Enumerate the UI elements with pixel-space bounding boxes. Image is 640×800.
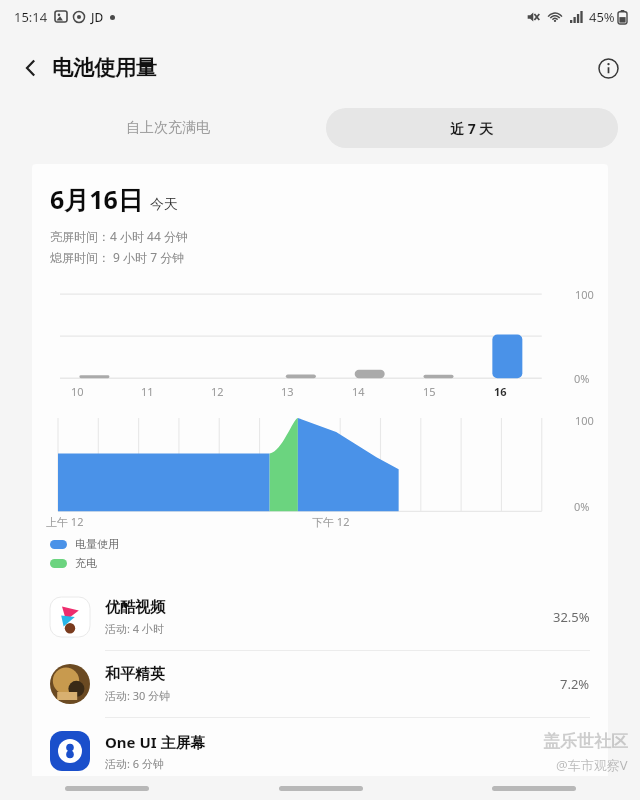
staticText: JD	[91, 9, 104, 25]
button[interactable]: One UI 主屏幕	[32, 718, 608, 784]
staticText: 熄屏时间： 9 小时 7 分钟	[50, 249, 185, 265]
button[interactable]: 优酷视频	[32, 584, 608, 650]
button[interactable]: Back	[10, 47, 52, 89]
button[interactable]: 和平精英	[32, 651, 608, 717]
staticText: 上午 12	[46, 514, 84, 529]
staticText: 电量使用	[75, 537, 119, 551]
staticText: 活动: 30 分钟	[105, 688, 171, 703]
staticText: 45%	[589, 8, 615, 26]
staticText: 亮屏时间：4 小时 44 分钟	[50, 228, 188, 244]
staticText: 活动: 6 分钟	[105, 756, 164, 771]
staticText: One UI 主屏幕	[105, 732, 206, 752]
staticText: 活动: 4 小时	[105, 621, 164, 636]
button[interactable]: 自上次充满电	[22, 108, 314, 148]
staticText: 11	[141, 384, 154, 399]
staticText: 充电	[75, 556, 97, 570]
staticText: 盖乐世社区	[543, 731, 628, 752]
button[interactable]: Home	[214, 776, 427, 800]
staticText: 近 7 天	[450, 119, 494, 138]
staticText: 14	[352, 384, 365, 399]
staticText: 16	[494, 384, 507, 399]
staticText: 15:14	[14, 8, 48, 26]
staticText: 100	[575, 413, 594, 428]
staticText: 10	[71, 384, 84, 399]
staticText: 6月16日	[50, 182, 143, 216]
staticText: 电池使用量	[52, 55, 157, 81]
button[interactable]: 近 7 天	[326, 108, 618, 148]
staticText: 32.5%	[553, 608, 590, 626]
staticText: 自上次充满电	[126, 119, 210, 137]
button[interactable]: Recents	[0, 776, 214, 800]
staticText: 100	[575, 287, 594, 302]
staticText: 今天	[150, 196, 178, 214]
staticText: 和平精英	[105, 665, 165, 684]
staticText: @车市观察V	[556, 756, 628, 774]
staticText: 7.2%	[560, 675, 590, 693]
staticText: 15	[423, 384, 436, 399]
staticText: 13	[281, 384, 294, 399]
button[interactable]: Back	[427, 776, 640, 800]
staticText: 12	[211, 384, 224, 399]
staticText: 下午 12	[312, 514, 350, 529]
staticText: 优酷视频	[105, 598, 165, 617]
button[interactable]: Information	[586, 46, 630, 90]
staticText: 0%	[574, 371, 590, 386]
staticText: 0%	[574, 499, 590, 514]
